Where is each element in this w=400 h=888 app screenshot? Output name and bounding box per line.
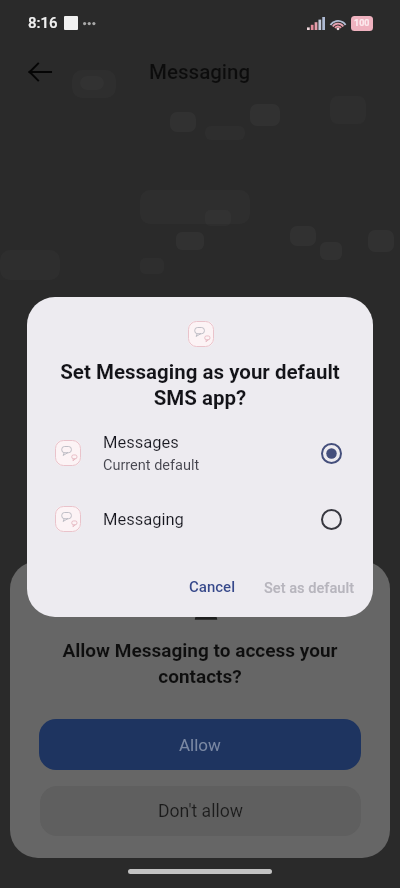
button[interactable]: Set as default <box>252 569 367 606</box>
button[interactable]: Messages <box>27 425 373 481</box>
staticText: Don't allow <box>158 801 243 822</box>
staticText: 100 <box>354 18 370 29</box>
staticText: Messaging <box>149 60 251 84</box>
button[interactable]: Allow <box>39 719 361 770</box>
staticText: Messages <box>103 433 179 452</box>
staticText: Cancel <box>189 578 236 596</box>
button[interactable]: Don't allow <box>40 786 361 836</box>
staticText: Messaging <box>103 510 184 529</box>
staticText: Current default <box>103 457 200 474</box>
staticText: Allow <box>179 735 221 755</box>
staticText: Set Messaging as your default SMS app? <box>27 360 373 410</box>
staticText: 8:16 <box>28 14 58 32</box>
staticText: Allow Messaging to access your contacts? <box>10 639 390 688</box>
button[interactable]: Back <box>16 48 64 96</box>
button[interactable]: Cancel <box>177 568 248 606</box>
staticText: Set as default <box>264 579 355 596</box>
button[interactable]: Messaging <box>27 491 373 547</box>
